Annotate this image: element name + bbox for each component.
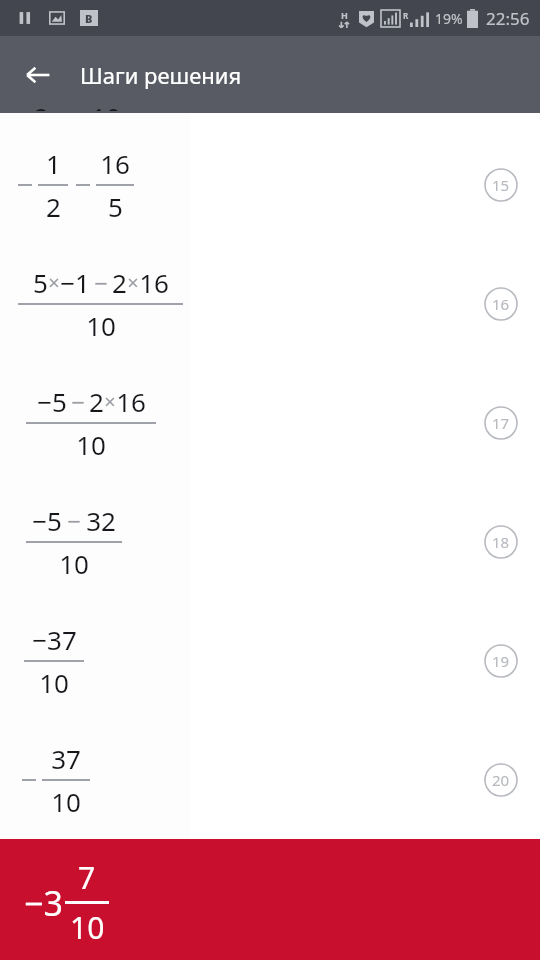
- staticText: 16: [100, 146, 130, 181]
- staticText: −3: [24, 880, 63, 926]
- staticText: 19: [492, 651, 510, 671]
- staticText: 2: [46, 189, 61, 224]
- button[interactable]: 37: [0, 720, 540, 839]
- staticText: 10: [51, 784, 81, 819]
- staticText: 22:56: [486, 7, 530, 30]
- staticText: R: [403, 10, 409, 21]
- staticText: 10: [86, 308, 116, 343]
- button[interactable]: 5: [0, 244, 540, 363]
- staticText: 16: [139, 265, 169, 300]
- staticText: 32: [86, 503, 116, 538]
- staticText: −: [67, 504, 81, 537]
- staticText: 10: [91, 99, 121, 111]
- staticText: 20: [492, 770, 510, 790]
- staticText: −: [71, 385, 85, 418]
- staticText: 10: [70, 907, 105, 948]
- button[interactable]: 1: [0, 125, 540, 244]
- staticText: −1: [60, 265, 90, 300]
- staticText: −37: [32, 622, 77, 657]
- staticText: 10: [59, 546, 89, 581]
- staticText: 17: [492, 413, 510, 433]
- staticText: −5: [37, 384, 67, 419]
- staticText: 10: [39, 665, 69, 700]
- staticText: −5: [32, 503, 62, 538]
- staticText: 16: [116, 384, 146, 419]
- staticText: 37: [51, 741, 81, 776]
- button[interactable]: −5: [0, 363, 540, 482]
- staticText: 1: [46, 146, 61, 181]
- staticText: 10: [76, 427, 106, 462]
- staticText: 2: [112, 265, 127, 300]
- staticText: 19%: [435, 9, 463, 28]
- staticText: 5: [33, 265, 48, 300]
- staticText: −: [94, 266, 108, 299]
- staticText: B: [85, 11, 93, 26]
- button[interactable]: Back: [14, 51, 62, 99]
- staticText: ×: [48, 269, 60, 296]
- button[interactable]: −37: [0, 601, 540, 720]
- staticText: 7: [78, 857, 96, 898]
- staticText: Шаги решения: [80, 60, 242, 90]
- staticText: 16: [492, 294, 510, 314]
- staticText: 18: [492, 532, 510, 552]
- staticText: H: [341, 9, 348, 21]
- staticText: ×: [127, 269, 139, 296]
- staticText: 5: [108, 189, 123, 224]
- staticText: 15: [492, 175, 510, 195]
- staticText: ×: [104, 388, 116, 415]
- button[interactable]: −5: [0, 482, 540, 601]
- staticText: 2: [89, 384, 104, 419]
- staticText: 2: [34, 99, 49, 111]
